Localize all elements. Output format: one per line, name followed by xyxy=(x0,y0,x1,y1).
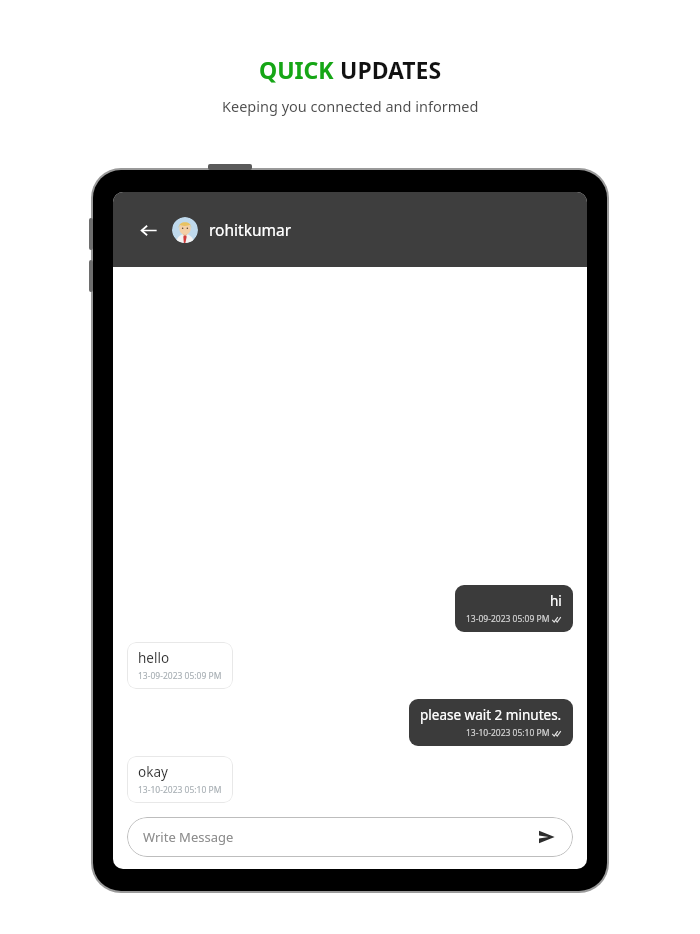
staticText: 13-10-2023 05:10 PM xyxy=(466,727,550,739)
staticText: 13-09-2023 05:09 PM xyxy=(138,670,222,682)
button[interactable]: Profile photo xyxy=(172,217,198,243)
staticText: UPDATES xyxy=(340,54,442,85)
button[interactable]: hello xyxy=(127,642,233,689)
button[interactable]: Write Message xyxy=(127,817,573,857)
button[interactable]: rohitkumar xyxy=(209,219,292,240)
staticText: 13-09-2023 05:09 PM xyxy=(466,613,550,625)
staticText: 13-10-2023 05:10 PM xyxy=(138,784,222,796)
staticText: hi xyxy=(550,592,562,610)
staticText: okay xyxy=(138,763,168,781)
staticText: QUICK xyxy=(259,54,340,85)
button[interactable]: please wait 2 minutes. xyxy=(409,699,573,746)
staticText: Write Message xyxy=(143,828,533,846)
button[interactable]: okay xyxy=(127,756,233,803)
button[interactable]: hi xyxy=(455,585,573,632)
staticText: please wait 2 minutes. xyxy=(420,706,562,724)
button[interactable]: Send xyxy=(533,824,559,850)
staticText: hello xyxy=(138,649,170,667)
staticText: Keeping you connected and informed xyxy=(222,96,479,116)
button[interactable]: Back xyxy=(133,215,163,245)
